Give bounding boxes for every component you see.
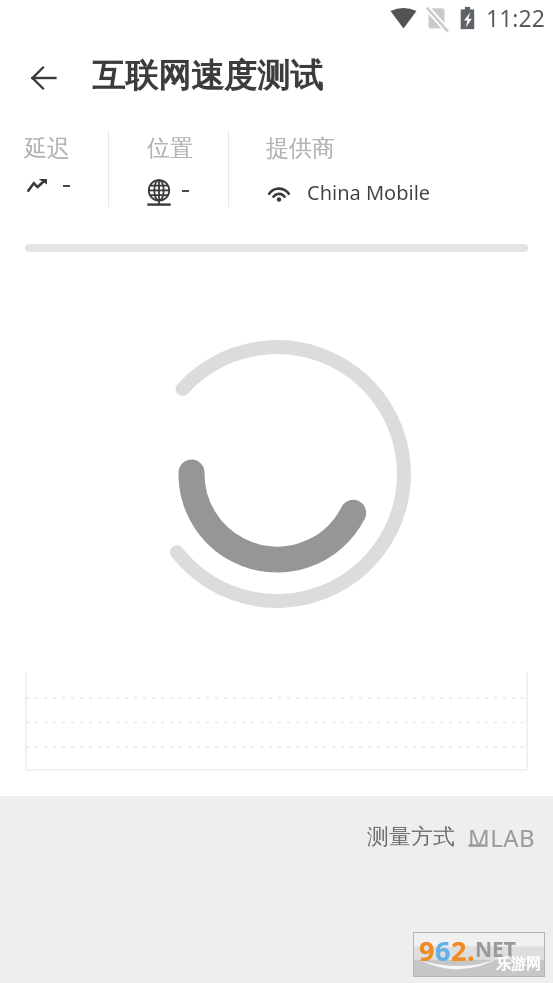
staticText: 2: [451, 932, 467, 969]
staticText: MLAB: [468, 821, 535, 853]
staticText: 位置: [147, 134, 193, 163]
button[interactable]: 提供商: [229, 130, 529, 207]
staticText: 互联网速度测试: [92, 55, 323, 97]
staticText: 11:22: [486, 2, 545, 33]
button[interactable]: Start speed test: [150, 347, 404, 601]
staticText: 6: [435, 932, 451, 969]
staticText: NET: [475, 935, 516, 964]
staticText: 9: [419, 932, 435, 969]
button[interactable]: 延迟: [0, 130, 108, 207]
button[interactable]: 位置: [109, 130, 228, 207]
staticText: 测量方式: [367, 823, 455, 851]
staticText: 延迟: [24, 134, 70, 163]
button[interactable]: Back: [20, 54, 68, 102]
staticText: China Mobile: [307, 179, 431, 206]
staticText: .: [467, 932, 475, 969]
staticText: 乐游网: [496, 955, 541, 974]
staticText: 提供商: [266, 134, 335, 163]
